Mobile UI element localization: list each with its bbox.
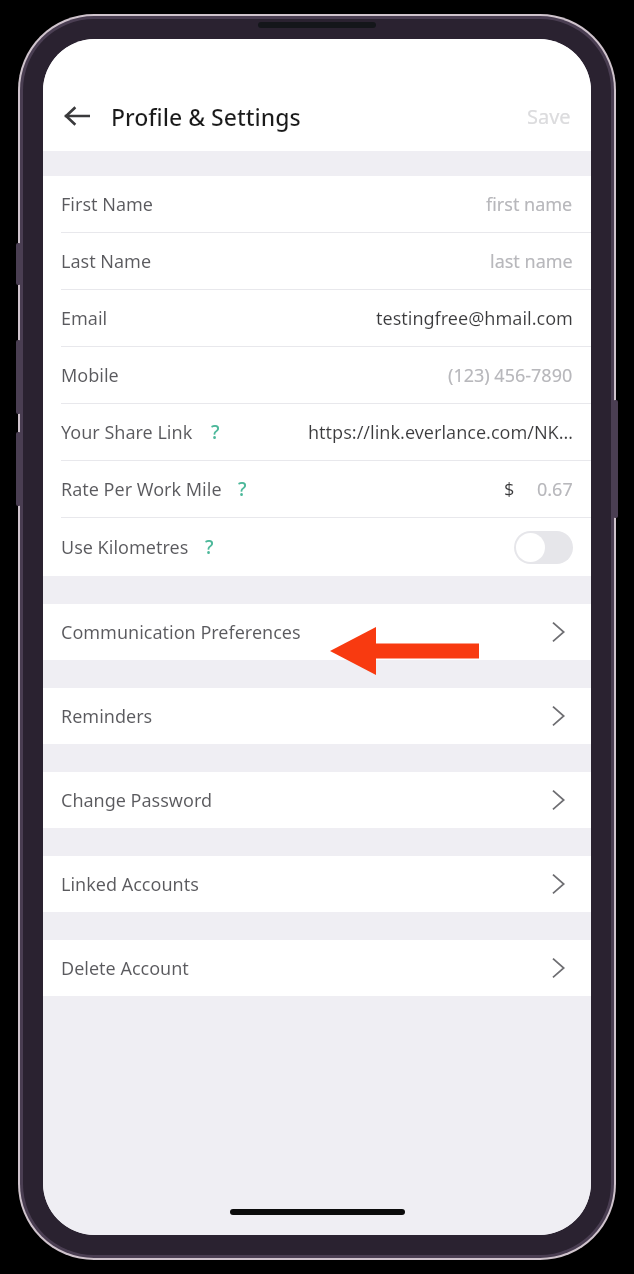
- button[interactable]: Back: [53, 92, 101, 140]
- staticText: $: [504, 477, 515, 502]
- button[interactable]: ?: [238, 476, 247, 502]
- button[interactable]: Reminders: [43, 688, 591, 744]
- staticText: First Name: [61, 192, 153, 217]
- staticText: 0.67: [537, 477, 573, 502]
- button[interactable]: Communication Preferences: [43, 604, 591, 660]
- staticText: Communication Preferences: [61, 620, 301, 645]
- button[interactable]: Rate Per Work Mile: [43, 461, 591, 517]
- staticText: Reminders: [61, 704, 153, 729]
- staticText: first name: [486, 192, 573, 217]
- button[interactable]: Change Password: [43, 772, 591, 828]
- staticText: Use Kilometres: [61, 535, 189, 560]
- staticText: (123) 456-7890: [448, 363, 573, 388]
- staticText: Last Name: [61, 249, 152, 274]
- button[interactable]: Save: [507, 93, 591, 140]
- staticText: Delete Account: [61, 956, 189, 981]
- button[interactable]: ?: [205, 534, 214, 560]
- staticText: https://link.everlance.com/NK…: [308, 420, 573, 445]
- staticText: Save: [527, 103, 571, 130]
- staticText: testingfree@hmail.com: [376, 306, 573, 331]
- staticText: Your Share Link: [61, 420, 193, 445]
- staticText: Change Password: [61, 788, 213, 813]
- button[interactable]: Use Kilometres toggle, off: [514, 531, 573, 564]
- staticText: Email: [61, 306, 108, 331]
- button[interactable]: ?: [211, 419, 220, 445]
- button[interactable]: Delete Account: [43, 940, 591, 996]
- button[interactable]: Your Share Link: [43, 404, 591, 460]
- staticText: Rate Per Work Mile: [61, 477, 222, 502]
- staticText: Linked Accounts: [61, 872, 199, 897]
- button[interactable]: Email: [43, 290, 591, 346]
- staticText: Profile & Settings: [111, 101, 301, 132]
- button[interactable]: Linked Accounts: [43, 856, 591, 912]
- button[interactable]: First Name: [43, 176, 591, 232]
- staticText: Mobile: [61, 363, 119, 388]
- staticText: last name: [490, 249, 573, 274]
- button[interactable]: Mobile: [43, 347, 591, 403]
- button[interactable]: Last Name: [43, 233, 591, 289]
